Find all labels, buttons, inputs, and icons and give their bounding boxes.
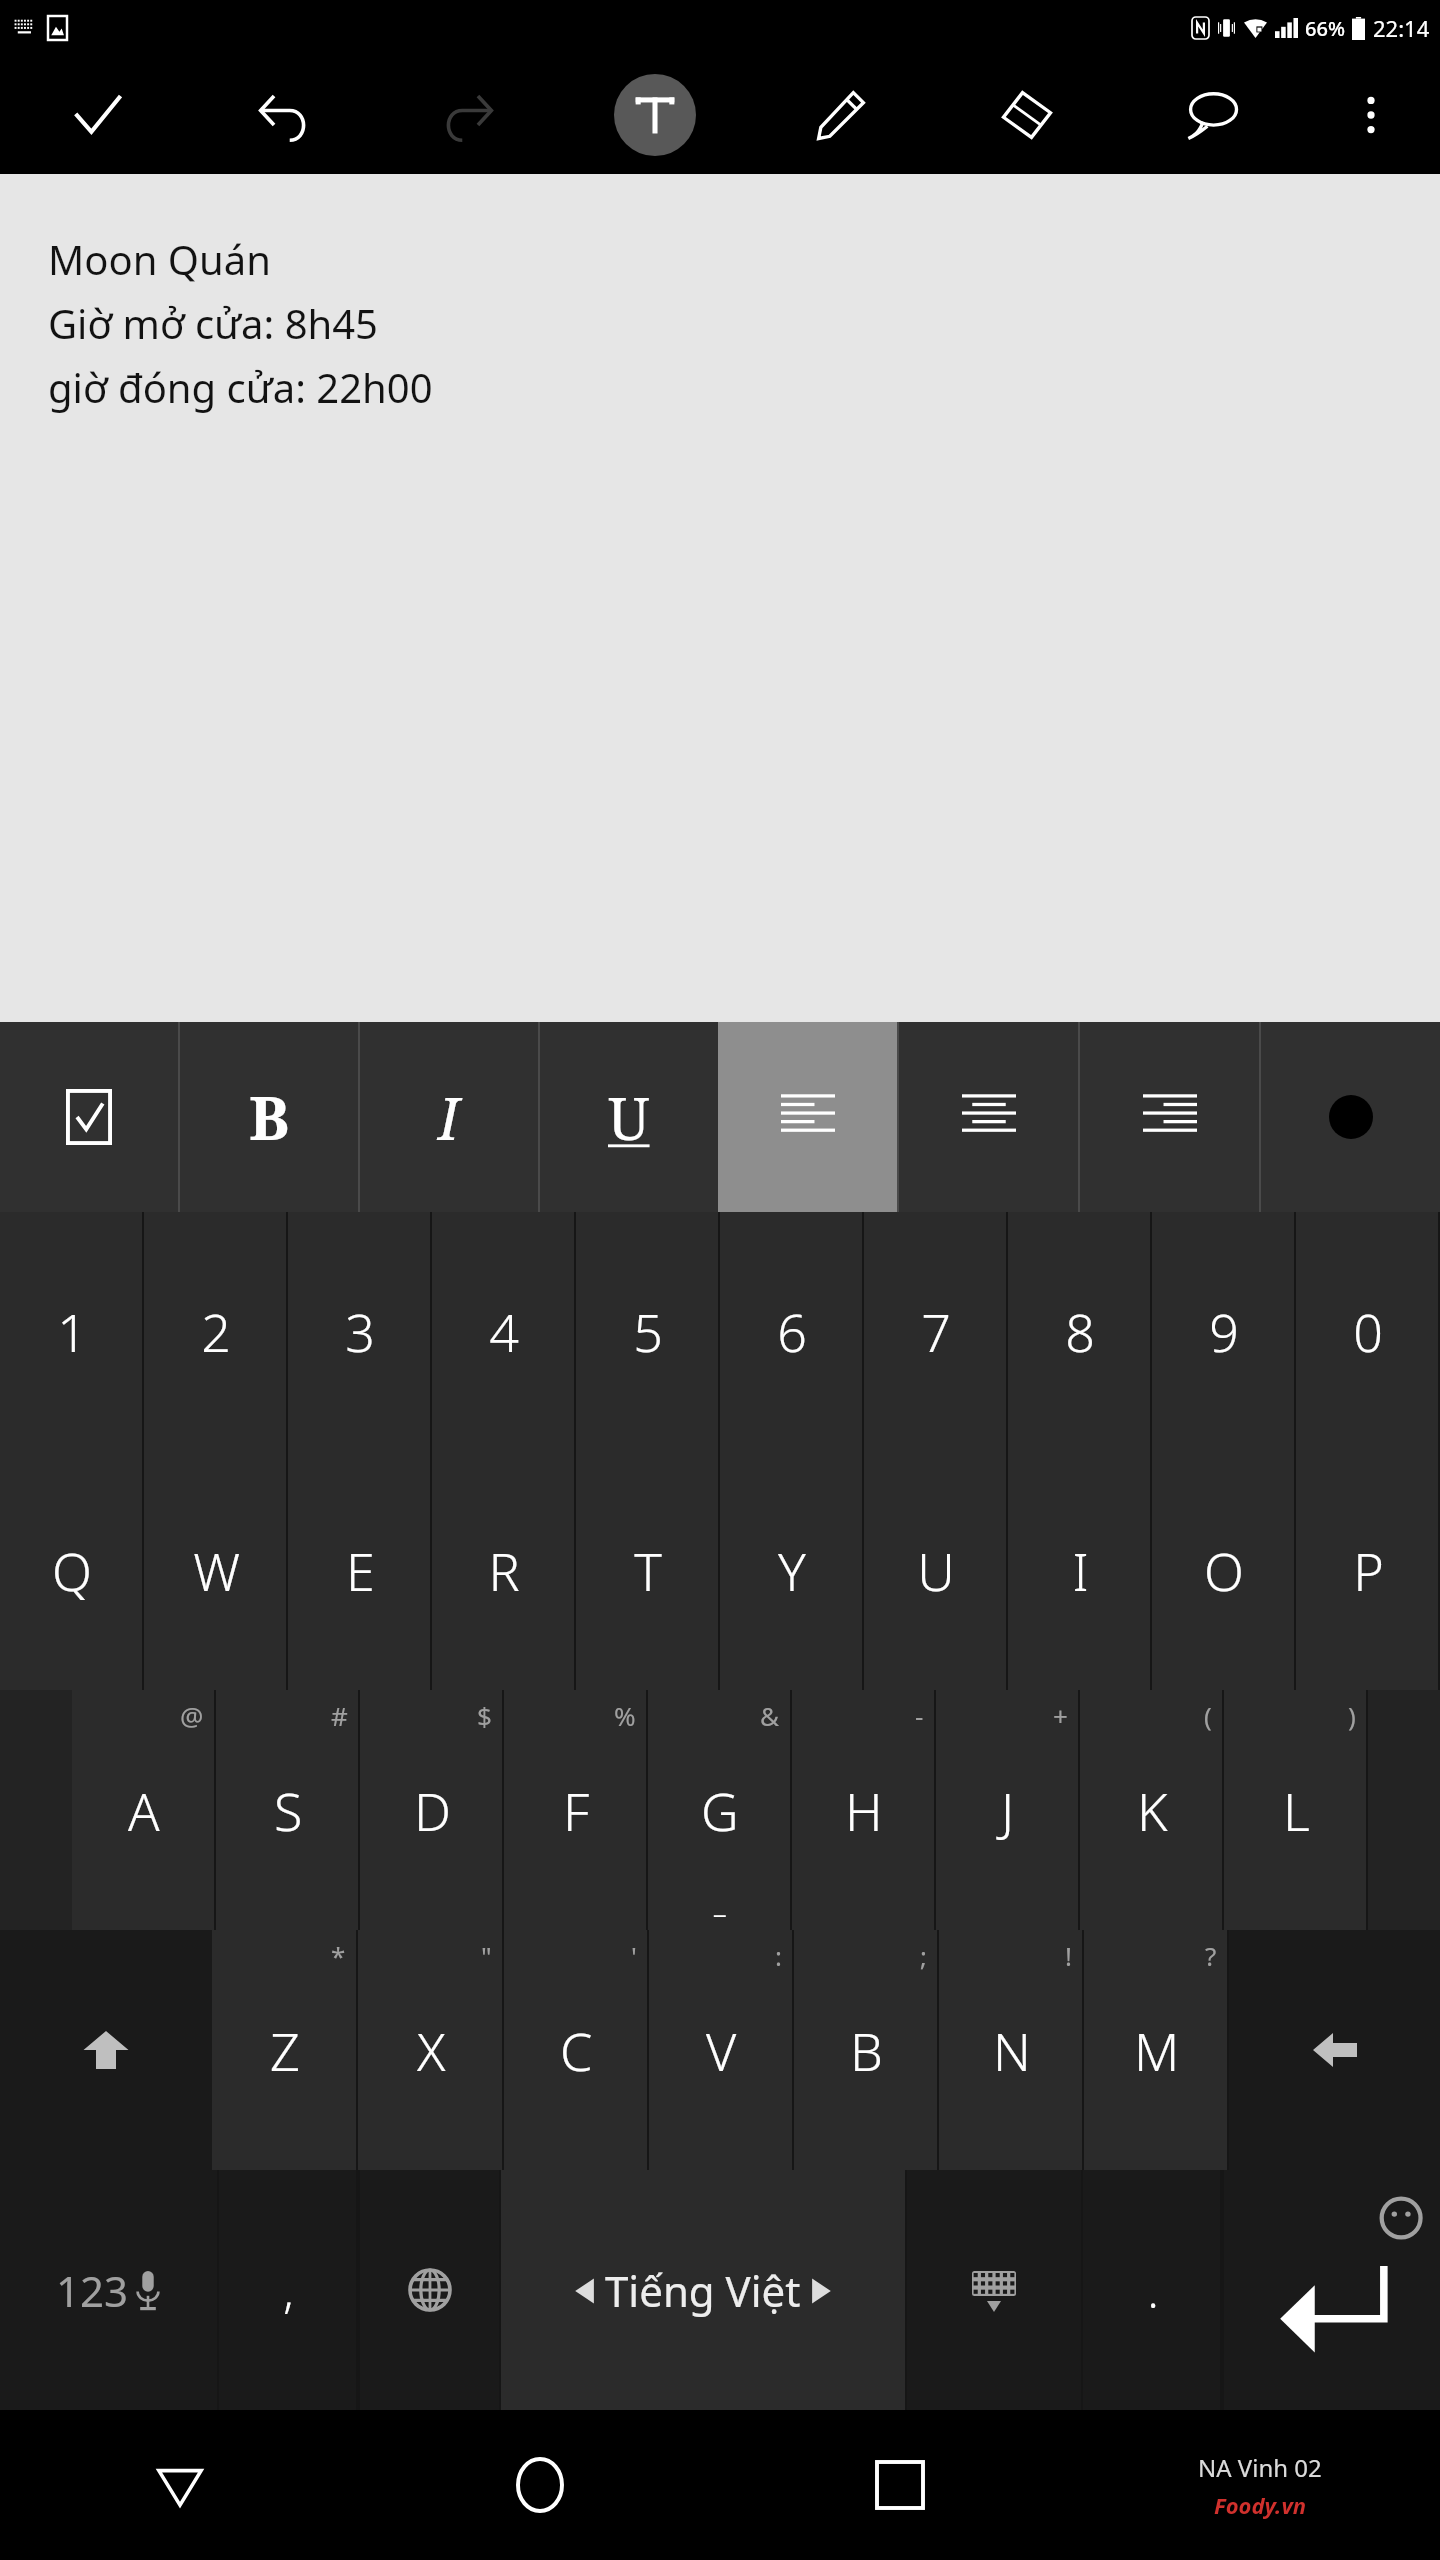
button[interactable]: Format option bbox=[180, 1022, 358, 1212]
button[interactable]: ) bbox=[1224, 1690, 1368, 1930]
button[interactable]: Y bbox=[720, 1451, 864, 1690]
button[interactable]: * bbox=[212, 1930, 358, 2170]
staticText: Q bbox=[52, 1535, 92, 1606]
button[interactable]: " bbox=[358, 1930, 504, 2170]
button[interactable]: Shift bbox=[0, 1930, 212, 2170]
button[interactable]: 2 bbox=[144, 1212, 288, 1451]
button[interactable]: . bbox=[1083, 2170, 1222, 2410]
button[interactable]: Q bbox=[0, 1451, 144, 1690]
staticText: 22:14 bbox=[1373, 13, 1430, 43]
button[interactable]: Comment bbox=[1120, 56, 1306, 174]
button[interactable]: Hide keyboard bbox=[907, 2170, 1081, 2410]
button[interactable]: Pen bbox=[748, 56, 934, 174]
button[interactable]: ( bbox=[1080, 1690, 1224, 1930]
button[interactable]: ' bbox=[504, 1930, 649, 2170]
button[interactable]: Change language bbox=[360, 2170, 499, 2410]
button[interactable]: Home bbox=[360, 2410, 720, 2560]
button[interactable]: U bbox=[864, 1451, 1008, 1690]
staticText: . bbox=[1147, 2259, 1159, 2322]
staticText: Tiếng Việt bbox=[605, 2262, 801, 2319]
button[interactable]: 7 bbox=[864, 1212, 1008, 1451]
staticText: Y bbox=[778, 1535, 806, 1606]
staticText: J bbox=[1001, 1775, 1015, 1846]
staticText: Giờ mở cửa: 8h45 bbox=[48, 296, 378, 350]
staticText: 1 bbox=[57, 1296, 87, 1367]
button[interactable]: # bbox=[216, 1690, 360, 1930]
button[interactable]: + bbox=[936, 1690, 1080, 1930]
staticText: A bbox=[128, 1775, 160, 1846]
staticText: C bbox=[560, 2015, 593, 2086]
button[interactable]: T bbox=[576, 1451, 720, 1690]
staticText: H bbox=[845, 1775, 883, 1846]
button[interactable]: E bbox=[288, 1451, 432, 1690]
button[interactable]: 9 bbox=[1152, 1212, 1296, 1451]
button[interactable]: Done bbox=[4, 56, 190, 174]
button[interactable]: 8 bbox=[1008, 1212, 1152, 1451]
staticText: ! bbox=[1065, 1938, 1072, 1973]
button[interactable]: Format option bbox=[718, 1022, 897, 1212]
staticText: M bbox=[1134, 2015, 1180, 2086]
button[interactable]: R bbox=[432, 1451, 576, 1690]
staticText: D bbox=[414, 1775, 451, 1846]
staticText: B bbox=[850, 2015, 883, 2086]
button[interactable]: Format option bbox=[0, 1022, 178, 1212]
staticText: & bbox=[760, 1698, 780, 1733]
staticText: $ bbox=[477, 1698, 492, 1733]
button[interactable]: Numbers and voice bbox=[0, 2170, 217, 2410]
button[interactable]: Eraser bbox=[934, 56, 1120, 174]
staticText: NA Vinh 02 bbox=[1198, 2451, 1322, 2484]
staticText: ) bbox=[1348, 1698, 1356, 1733]
button[interactable]: ! bbox=[939, 1930, 1084, 2170]
staticText: U bbox=[608, 1078, 650, 1157]
button[interactable]: O bbox=[1152, 1451, 1296, 1690]
staticText: Moon Quán bbox=[48, 232, 271, 286]
button[interactable]: Enter bbox=[1224, 2170, 1440, 2410]
button[interactable]: More options bbox=[1306, 56, 1436, 174]
staticText: 8 bbox=[1065, 1296, 1095, 1367]
staticText: V bbox=[706, 2015, 737, 2086]
button[interactable]: $ bbox=[360, 1690, 504, 1930]
button[interactable]: - bbox=[792, 1690, 936, 1930]
button[interactable]: 0 bbox=[1296, 1212, 1440, 1451]
button[interactable]: Format option bbox=[540, 1022, 718, 1212]
button[interactable]: Format option bbox=[899, 1022, 1078, 1212]
staticText: W bbox=[193, 1535, 240, 1606]
button[interactable]: % bbox=[504, 1690, 648, 1930]
button[interactable]: Space Tiếng Việt bbox=[501, 2170, 905, 2410]
button[interactable]: 4 bbox=[432, 1212, 576, 1451]
staticText: 7 bbox=[921, 1296, 951, 1367]
button[interactable]: I bbox=[1008, 1451, 1152, 1690]
button[interactable]: 1 bbox=[0, 1212, 144, 1451]
button[interactable]: @ bbox=[72, 1690, 216, 1930]
staticText: , bbox=[283, 2259, 294, 2322]
button[interactable]: : bbox=[649, 1930, 794, 2170]
staticText: 2 bbox=[201, 1296, 231, 1367]
button[interactable]: 5 bbox=[576, 1212, 720, 1451]
button[interactable]: ; bbox=[794, 1930, 939, 2170]
button[interactable]: 3 bbox=[288, 1212, 432, 1451]
button[interactable]: Format option bbox=[1261, 1022, 1440, 1212]
staticText: 123 bbox=[56, 2262, 129, 2319]
button[interactable]: Text tool bbox=[614, 74, 696, 156]
button[interactable]: Undo bbox=[190, 56, 376, 174]
staticText: 66% bbox=[1305, 15, 1345, 42]
button[interactable]: Format option bbox=[1080, 1022, 1259, 1212]
staticText: L bbox=[1283, 1775, 1310, 1846]
staticText: _ bbox=[714, 1885, 726, 1920]
button[interactable]: Format option bbox=[360, 1022, 538, 1212]
button[interactable]: P bbox=[1296, 1451, 1440, 1690]
button[interactable]: 6 bbox=[720, 1212, 864, 1451]
staticText: 3 bbox=[345, 1296, 375, 1367]
staticText: P bbox=[1353, 1535, 1384, 1606]
button[interactable]: ? bbox=[1084, 1930, 1229, 2170]
staticText: 5 bbox=[633, 1296, 663, 1367]
button[interactable]: W bbox=[144, 1451, 288, 1690]
button[interactable]: Redo bbox=[376, 56, 562, 174]
staticText: F bbox=[563, 1775, 590, 1846]
button[interactable]: & bbox=[648, 1690, 792, 1930]
button[interactable]: Recent apps bbox=[720, 2410, 1080, 2560]
button[interactable]: Back bbox=[0, 2410, 360, 2560]
staticText: S bbox=[274, 1775, 303, 1846]
button[interactable]: , bbox=[219, 2170, 358, 2410]
button[interactable]: Backspace bbox=[1229, 1930, 1440, 2170]
